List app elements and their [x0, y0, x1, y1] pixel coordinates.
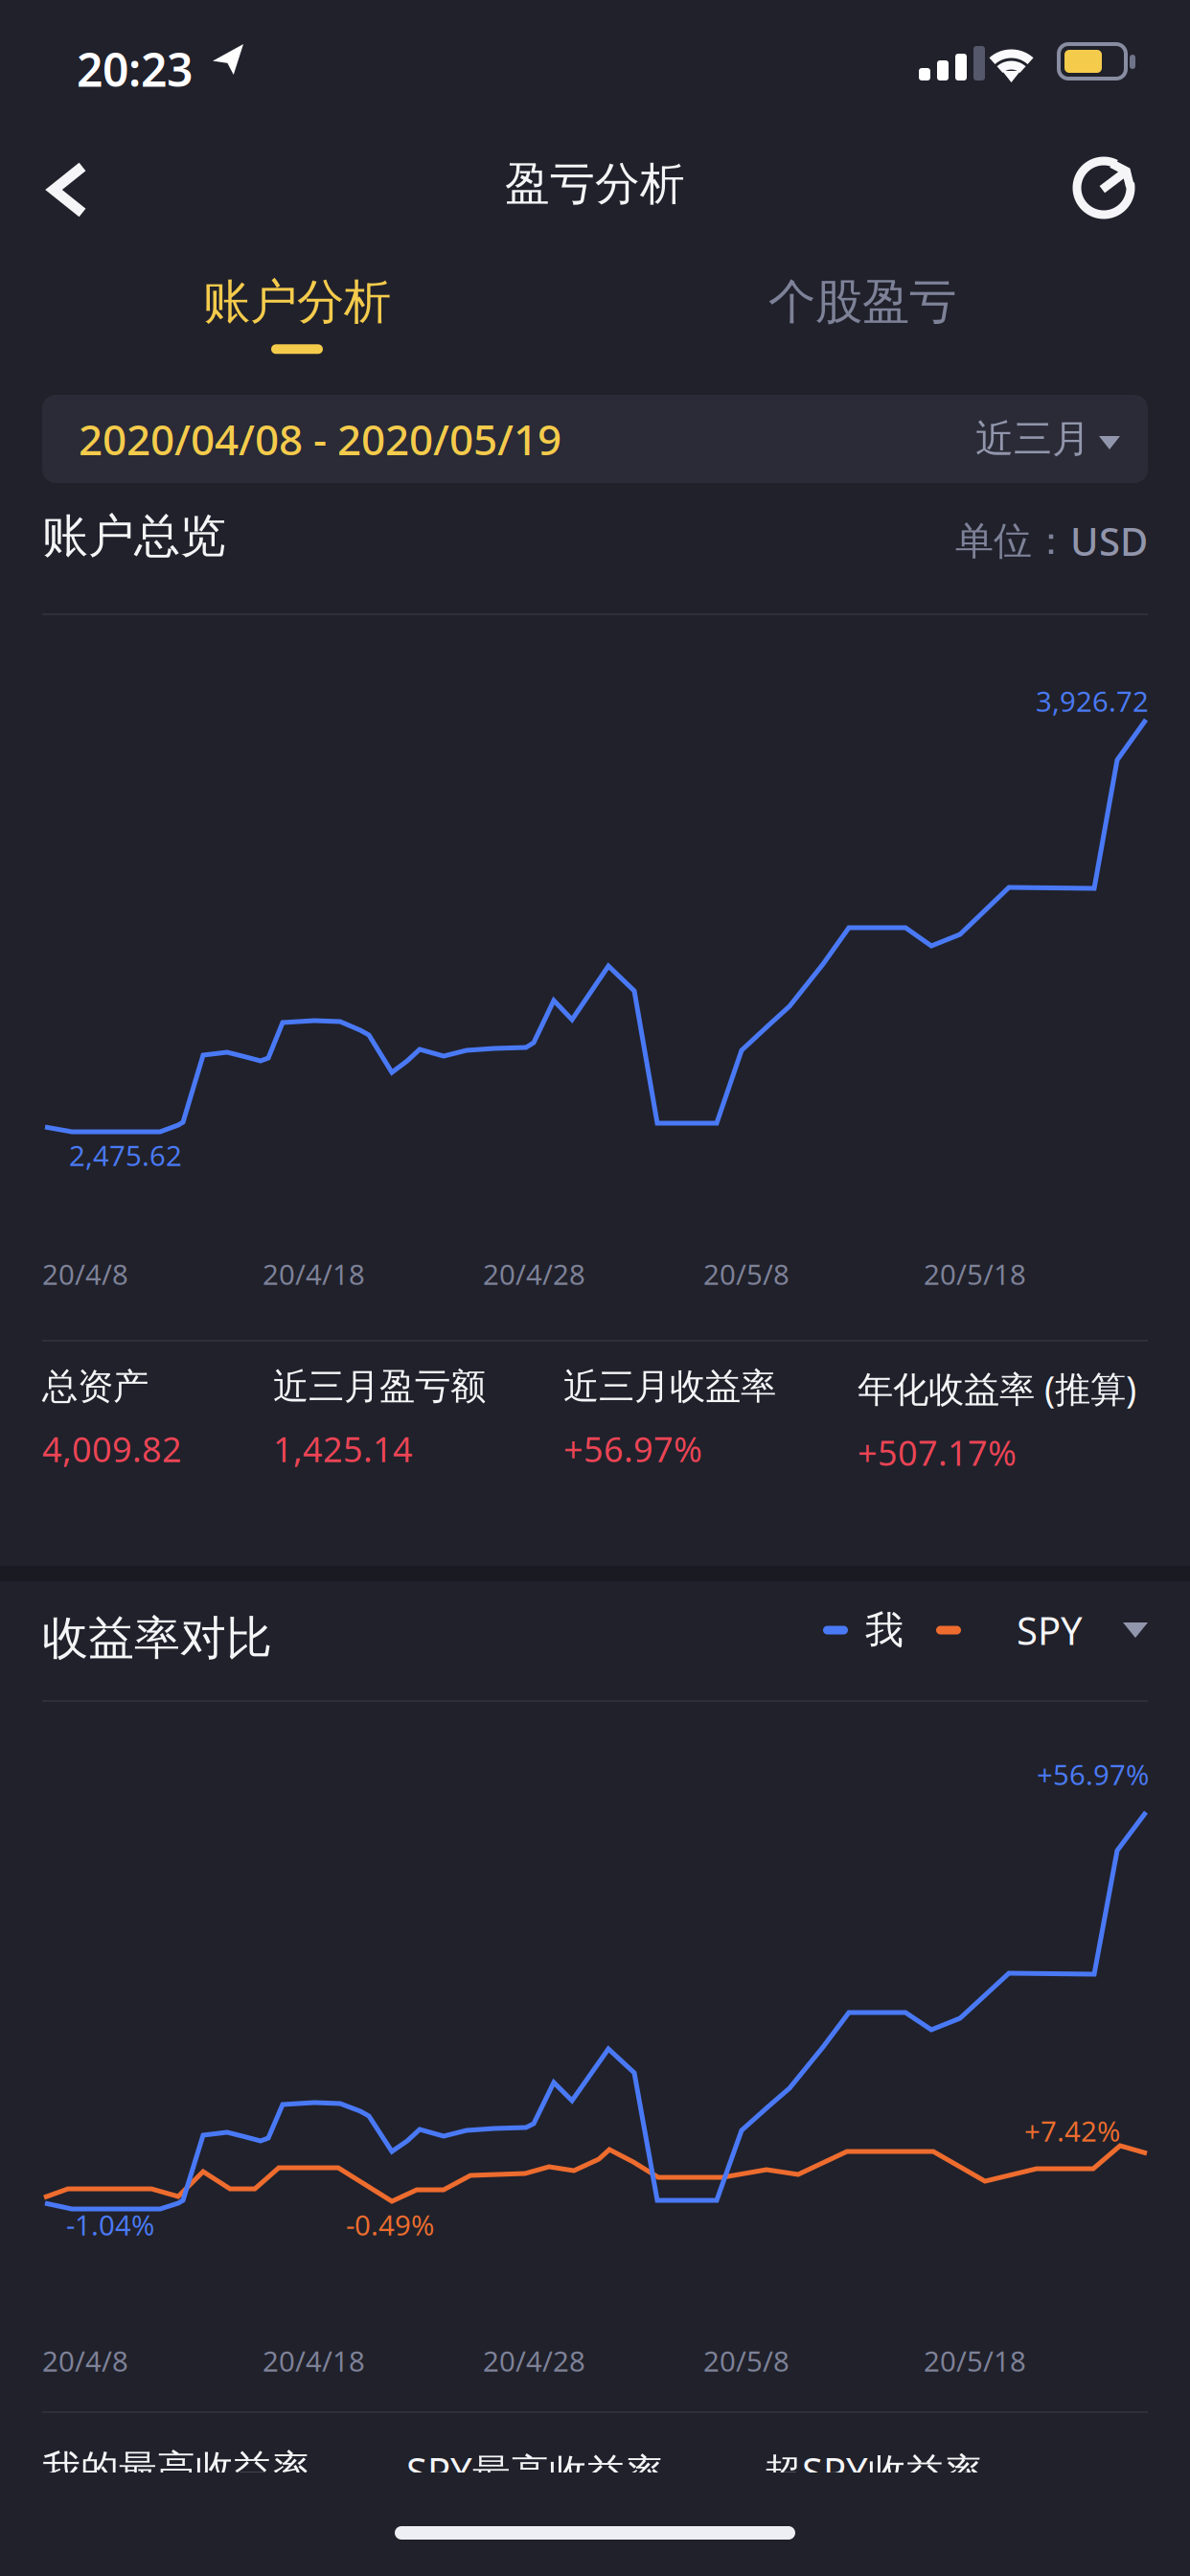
- staticText: 账户分析: [203, 273, 391, 331]
- staticText: 20/5/8: [703, 2342, 790, 2380]
- staticText: 20/4/28: [483, 1255, 585, 1293]
- staticText: 20/4/28: [483, 2342, 585, 2380]
- staticText: 20/5/18: [924, 2342, 1026, 2380]
- staticText: 20/4/8: [42, 1255, 128, 1293]
- staticText: 收益率对比: [42, 1610, 272, 1667]
- staticText: -1.04%: [66, 2206, 154, 2243]
- button[interactable]: 个股盈亏: [661, 261, 1064, 366]
- staticText: +56.97%: [1037, 1756, 1149, 1793]
- staticText: 账户总览: [42, 508, 226, 564]
- staticText: SPY最高收益率: [406, 2446, 664, 2497]
- staticText: 20/4/8: [42, 2342, 128, 2380]
- staticText: +507.17%: [858, 1429, 1017, 1475]
- staticText: 盈亏分析: [505, 156, 685, 211]
- staticText: +7.42%: [1024, 2112, 1120, 2150]
- staticText: 1,425.14: [273, 1426, 413, 1472]
- staticText: 20:23: [77, 38, 193, 99]
- staticText: 20/5/18: [924, 1255, 1026, 1293]
- staticText: 我: [865, 1607, 904, 1654]
- staticText: 近三月盈亏额: [273, 1365, 486, 1409]
- staticText: 20/5/8: [703, 1255, 790, 1293]
- staticText: 2,475.62: [69, 1137, 182, 1174]
- staticText: 4,009.82: [42, 1426, 182, 1472]
- staticText: 年化收益率 (推算): [858, 1365, 1136, 1412]
- staticText: +56.97%: [563, 1426, 702, 1472]
- staticText: 20/4/18: [263, 2342, 365, 2380]
- button[interactable]: 账户分析: [96, 261, 498, 366]
- button[interactable]: Back: [23, 142, 113, 238]
- staticText: USD: [1070, 516, 1148, 566]
- button[interactable]: Refresh: [1052, 136, 1156, 240]
- staticText: 近三月: [975, 415, 1090, 462]
- staticText: 近三月收益率: [563, 1365, 776, 1409]
- staticText: 超SPY收益率: [764, 2446, 983, 2497]
- staticText: 我的最高收益率: [42, 2446, 310, 2493]
- staticText: 20/4/18: [263, 1255, 365, 1293]
- staticText: 单位：: [955, 517, 1070, 565]
- staticText: 个股盈亏: [768, 273, 956, 331]
- staticText: 总资产: [42, 1365, 149, 1409]
- button[interactable]: 2020/04/08 - 2020/05/19: [42, 395, 1148, 483]
- staticText: SPY: [1017, 1605, 1083, 1656]
- staticText: 3,926.72: [1036, 682, 1149, 720]
- staticText: -0.49%: [346, 2206, 434, 2243]
- staticText: 2020/04/08 - 2020/05/19: [79, 411, 561, 467]
